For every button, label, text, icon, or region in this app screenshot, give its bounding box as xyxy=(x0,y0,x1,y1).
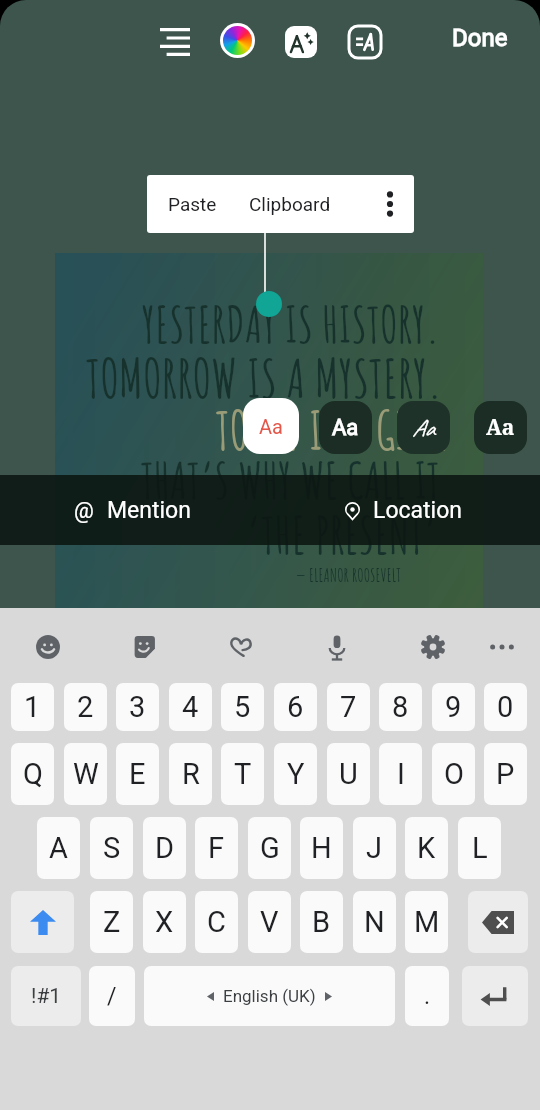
button[interactable]: H xyxy=(300,817,343,879)
button[interactable]: T xyxy=(221,743,264,805)
staticText: Z xyxy=(103,905,121,939)
button[interactable]: Voice input xyxy=(313,616,361,678)
button[interactable]: 0 xyxy=(484,683,527,731)
button[interactable]: 5 xyxy=(221,683,264,731)
staticText: V xyxy=(260,905,279,939)
button[interactable]: Z xyxy=(90,891,133,953)
staticText: J xyxy=(366,831,383,865)
button[interactable]: Aa xyxy=(243,398,299,454)
staticText: F xyxy=(208,831,225,865)
button[interactable]: @ xyxy=(74,475,204,545)
button[interactable]: G xyxy=(248,817,291,879)
staticText: Location xyxy=(373,497,462,524)
button[interactable]: 3 xyxy=(116,683,159,731)
button[interactable]: E xyxy=(116,743,159,805)
button[interactable]: Text colour xyxy=(218,21,256,59)
staticText: Aa xyxy=(486,413,515,442)
button[interactable]: R xyxy=(169,743,212,805)
button[interactable]: Aa xyxy=(319,401,372,454)
staticText: Y xyxy=(287,757,305,791)
button[interactable]: U xyxy=(327,743,370,805)
button[interactable]: I xyxy=(379,743,422,805)
staticText: M xyxy=(414,905,440,939)
button[interactable]: Location xyxy=(345,475,475,545)
button[interactable]: C xyxy=(195,891,238,953)
staticText: E xyxy=(129,757,146,791)
button[interactable]: Emoji xyxy=(24,616,72,678)
staticText: 1 xyxy=(24,690,41,724)
button[interactable]: P xyxy=(484,743,527,805)
button[interactable]: K xyxy=(405,817,448,879)
staticText: Q xyxy=(23,757,43,791)
staticText: ‘THE PRESENT’ xyxy=(246,502,438,566)
staticText: A xyxy=(49,831,68,865)
staticText: T xyxy=(234,757,252,791)
button[interactable]: X xyxy=(143,891,186,953)
staticText: 9 xyxy=(445,690,462,724)
button[interactable]: F xyxy=(195,817,238,879)
button[interactable]: O xyxy=(432,743,475,805)
button[interactable]: B xyxy=(300,891,343,953)
button[interactable]: W xyxy=(64,743,107,805)
staticText: C xyxy=(207,905,226,939)
staticText: TOMORROW IS A MYSTERY. xyxy=(86,344,443,411)
staticText: Aa xyxy=(412,413,435,443)
button[interactable]: Font size xyxy=(285,26,317,58)
staticText: N xyxy=(364,905,385,939)
button[interactable]: 8 xyxy=(379,683,422,731)
staticText: I xyxy=(397,757,405,791)
staticText: 4 xyxy=(182,690,199,724)
button[interactable]: Done xyxy=(440,14,520,62)
staticText: THAT’S WHY WE CALL IT xyxy=(141,449,440,511)
button[interactable]: Text handle xyxy=(256,291,282,317)
button[interactable]: 2 xyxy=(64,683,107,731)
button[interactable]: More options xyxy=(366,175,414,233)
staticText: U xyxy=(339,757,358,791)
button[interactable]: M xyxy=(405,891,448,953)
button[interactable]: S xyxy=(90,817,133,879)
button[interactable]: 7 xyxy=(327,683,370,731)
button[interactable]: Shift xyxy=(11,891,74,953)
staticText: R xyxy=(182,757,200,791)
button[interactable]: L xyxy=(458,817,501,879)
button[interactable]: V xyxy=(248,891,291,953)
staticText: B xyxy=(312,905,331,939)
button[interactable]: Aa xyxy=(474,401,527,454)
staticText: 6 xyxy=(287,690,304,724)
button[interactable]: D xyxy=(143,817,186,879)
button[interactable]: Enter xyxy=(462,966,528,1026)
staticText: English (UK) xyxy=(223,986,316,1006)
button[interactable]: Space xyxy=(144,966,395,1026)
button[interactable]: 4 xyxy=(169,683,212,731)
staticText: H xyxy=(311,831,332,865)
staticText: P xyxy=(496,757,515,791)
button[interactable]: Aa xyxy=(397,401,450,454)
button[interactable]: Backspace xyxy=(468,891,528,953)
button[interactable]: 1 xyxy=(11,683,54,731)
staticText: . xyxy=(424,983,431,1010)
button[interactable]: Text style xyxy=(349,26,381,58)
staticText: W xyxy=(73,757,99,791)
staticText: !#1 xyxy=(31,984,62,1009)
button[interactable]: Q xyxy=(11,743,54,805)
button[interactable]: Stickers xyxy=(120,616,168,678)
button[interactable]: A xyxy=(37,817,80,879)
button[interactable]: Y xyxy=(274,743,317,805)
button[interactable]: !#1 xyxy=(11,966,81,1026)
button[interactable]: 6 xyxy=(274,683,317,731)
button[interactable]: Clipboard xyxy=(238,175,342,233)
button[interactable]: Paste xyxy=(147,175,238,233)
button[interactable]: More xyxy=(478,616,526,678)
button[interactable]: Text alignment xyxy=(152,19,198,65)
staticText: L xyxy=(472,831,488,865)
button[interactable]: N xyxy=(353,891,396,953)
button[interactable]: / xyxy=(89,966,135,1026)
staticText: 5 xyxy=(234,690,251,724)
button[interactable]: 9 xyxy=(432,683,475,731)
staticText: YESTERDAY IS HISTORY. xyxy=(142,292,440,355)
staticText: / xyxy=(107,983,117,1010)
button[interactable]: . xyxy=(405,966,449,1026)
button[interactable]: Settings xyxy=(409,616,457,678)
button[interactable]: J xyxy=(353,817,396,879)
button[interactable]: Favourites xyxy=(217,616,265,678)
